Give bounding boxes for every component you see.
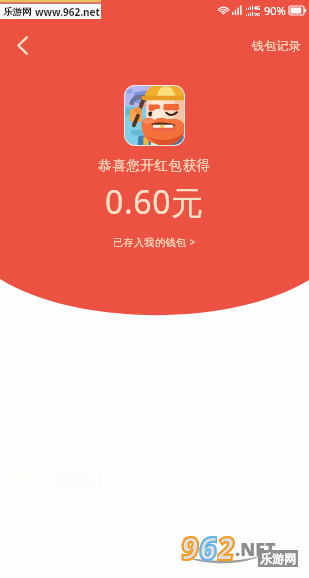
staticText: 恭喜您开红包获得 (98, 157, 211, 174)
staticText: 6 (199, 527, 217, 567)
staticText: 9 (181, 527, 199, 567)
staticText: 2 (217, 527, 235, 567)
staticText: 钱包记录 (252, 38, 302, 53)
staticText: .NET (235, 537, 276, 562)
button[interactable]: 已存入我的钱包 > (107, 232, 202, 252)
button[interactable]: 钱包记录 (250, 34, 304, 57)
staticText: 6 (199, 527, 217, 567)
staticText: 4G (254, 5, 261, 12)
button[interactable]: Back (2, 25, 42, 65)
staticText: 90% (264, 3, 286, 18)
staticText: 0.60元 (105, 180, 204, 224)
staticText: 2G (254, 12, 261, 16)
staticText: 9 (181, 527, 199, 567)
staticText: 乐游网 (260, 551, 296, 566)
staticText: www.962.net (35, 5, 100, 19)
staticText: 已存入我的钱包 > (113, 235, 196, 249)
staticText: 乐游网 (3, 6, 32, 18)
staticText: 2 (217, 527, 235, 567)
